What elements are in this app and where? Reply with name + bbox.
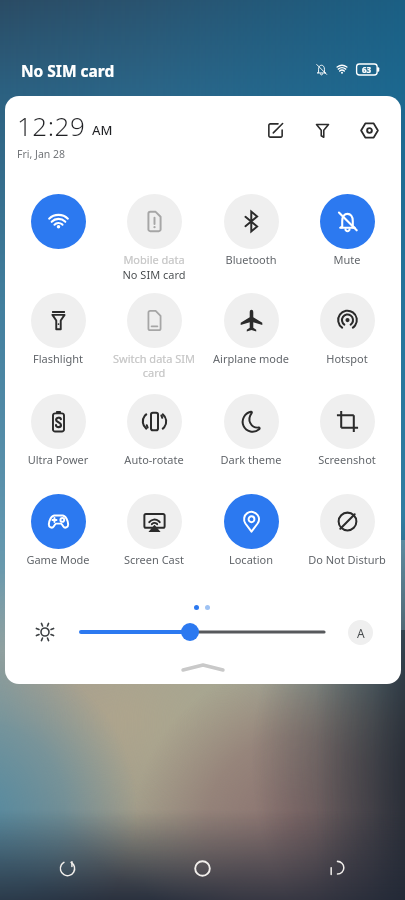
staticText: Ultra Power	[12, 452, 104, 467]
staticText: Flashlight	[12, 351, 104, 366]
button[interactable]: Switch data SIM card	[106, 293, 202, 380]
button[interactable]: Mobile data	[106, 194, 202, 282]
button[interactable]: Filter	[305, 113, 339, 147]
staticText: Dark theme	[205, 452, 297, 467]
staticText: Screen Cast	[108, 552, 200, 567]
staticText: Switch data SIM card	[108, 351, 200, 380]
button[interactable]: Dark theme	[203, 394, 299, 467]
staticText: Auto-rotate	[108, 452, 200, 467]
button[interactable]: Auto-rotate	[106, 394, 202, 467]
button[interactable]: Back	[270, 836, 405, 900]
staticText: No SIM card	[21, 60, 115, 81]
staticText: 63	[362, 64, 372, 75]
button[interactable]: Bluetooth	[203, 194, 299, 267]
button[interactable]: Game Mode	[10, 494, 106, 567]
button[interactable]: Ultra Power	[10, 394, 106, 467]
button[interactable]: Flashlight	[10, 293, 106, 366]
button[interactable]: Home	[135, 836, 270, 900]
button[interactable]: Do Not Disturb	[299, 494, 395, 567]
staticText: A	[357, 625, 365, 641]
button[interactable]: Screen Cast	[106, 494, 202, 567]
button[interactable]: Settings	[352, 113, 386, 147]
staticText: Hotspot	[301, 351, 393, 366]
staticText: Mute	[301, 252, 393, 267]
button[interactable]: Hotspot	[299, 293, 395, 366]
button[interactable]	[10, 194, 106, 252]
staticText: Fri, Jan 28	[17, 147, 66, 161]
button[interactable]: Edit tiles	[258, 113, 292, 147]
staticText: Game Mode	[12, 552, 104, 567]
staticText: Screenshot	[301, 452, 393, 467]
button[interactable]: A	[348, 620, 373, 645]
staticText: Airplane mode	[205, 351, 297, 366]
button[interactable]: Screenshot	[299, 394, 395, 467]
staticText: No SIM card	[106, 267, 202, 282]
staticText: Location	[205, 552, 297, 567]
button[interactable]: Recents	[0, 836, 135, 900]
staticText: Mobile data	[108, 252, 200, 267]
button[interactable]: Mute	[299, 194, 395, 267]
button[interactable]: Location	[203, 494, 299, 567]
staticText: Do Not Disturb	[301, 552, 393, 567]
button[interactable]: Brightness	[75, 620, 330, 644]
button[interactable]: Airplane mode	[203, 293, 299, 366]
staticText: Bluetooth	[205, 252, 297, 267]
staticText: 12:29	[17, 108, 86, 143]
staticText: AM	[92, 121, 113, 139]
